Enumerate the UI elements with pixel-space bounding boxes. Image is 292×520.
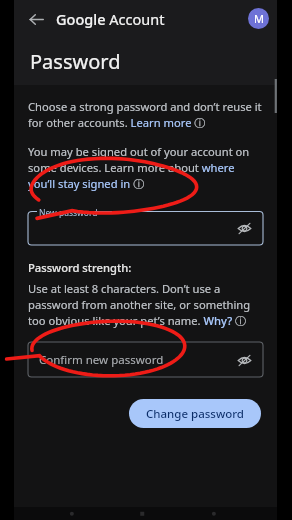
staticText: Confirm new password [39,352,164,368]
staticText: Password strength: [28,260,132,275]
staticText: Change password [146,406,244,422]
staticText: New password [39,207,98,219]
staticText: M [254,11,264,26]
staticText: Password [30,48,121,75]
staticText: Use at least 8 characters. Don’t use a p… [28,281,263,328]
staticText: Choose a strong password and don’t reuse… [28,99,263,130]
button[interactable]: Change password [129,399,261,428]
button[interactable]: Back [22,5,50,33]
button[interactable]: Show password [234,218,254,238]
button[interactable]: Account [248,8,269,29]
staticText: Google Account [56,9,165,29]
button[interactable]: Show confirm password [234,350,254,370]
button[interactable]: Confirm new password [28,342,263,377]
button[interactable]: New password [28,205,263,245]
staticText: You may be signed out of your account on… [28,144,263,191]
